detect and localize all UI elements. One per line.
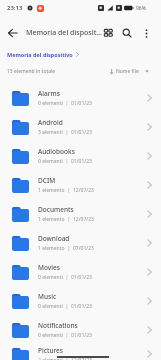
staticText: 01/01/23 — [71, 158, 92, 165]
staticText: 0 elementi — [38, 303, 63, 310]
staticText: | — [63, 274, 71, 281]
button[interactable]: DCIM — [0, 170, 161, 199]
staticText: 12/07/23 — [71, 357, 92, 360]
staticText: Android — [38, 118, 63, 127]
staticText: | — [63, 303, 71, 310]
staticText: 0 elementi — [38, 332, 63, 339]
staticText: 0 elementi — [38, 274, 63, 281]
staticText: 1 elemento — [38, 245, 65, 252]
staticText: | — [65, 245, 73, 252]
staticText: | — [63, 158, 71, 165]
staticText: 23:13 — [7, 4, 23, 12]
staticText: 1 elemento — [38, 216, 65, 223]
staticText: 2 elementi — [38, 357, 63, 360]
staticText: 01/01/23 — [71, 129, 92, 136]
button[interactable]: Documents — [0, 199, 161, 228]
button[interactable]: Android — [0, 112, 161, 141]
staticText: | — [63, 100, 71, 107]
button[interactable]: Pictures — [0, 346, 161, 360]
staticText: Notifications — [38, 321, 78, 330]
staticText: | — [63, 332, 71, 339]
staticText: 01/01/23 — [71, 332, 92, 339]
staticText: 1 elemento — [38, 187, 65, 194]
staticText: Alarms — [38, 89, 60, 98]
staticText: 12/07/23 — [73, 187, 94, 194]
staticText: 3 elementi — [38, 129, 63, 136]
staticText: | — [65, 216, 73, 223]
staticText: 96% — [136, 5, 146, 12]
button[interactable]: Memoria del dispositivo — [7, 51, 79, 58]
staticText: Memoria del disposit... — [26, 28, 103, 38]
staticText: 07/01/23 — [73, 245, 94, 252]
staticText: DCIM — [38, 176, 56, 185]
staticText: Documents — [38, 205, 74, 214]
staticText: 0 elementi — [38, 158, 63, 165]
button[interactable]: Notifications — [0, 315, 161, 344]
staticText: Pictures — [38, 346, 63, 355]
button[interactable]: Music — [0, 286, 161, 315]
button[interactable] — [8, 23, 22, 43]
staticText: | — [63, 357, 71, 360]
staticText: 12/07/23 — [73, 216, 94, 223]
staticText: Music — [38, 292, 57, 301]
button[interactable]: Download — [0, 228, 161, 257]
staticText: Memoria del dispositivo — [7, 51, 73, 58]
button[interactable] — [102, 22, 114, 44]
staticText: 01/01/23 — [71, 100, 92, 107]
staticText: Audiobooks — [38, 147, 75, 156]
staticText: 0 elementi — [38, 100, 63, 107]
staticText: Download — [38, 234, 70, 243]
staticText: 01/01/23 — [71, 274, 92, 281]
staticText: Movies — [38, 263, 60, 272]
staticText: Nome file — [116, 68, 139, 75]
button[interactable] — [121, 22, 133, 44]
button[interactable]: Movies — [0, 257, 161, 286]
staticText: 13 elementi in totale — [7, 68, 56, 75]
button[interactable] — [140, 22, 152, 44]
staticText: | — [63, 129, 71, 136]
staticText: | — [65, 187, 73, 194]
button[interactable]: Alarms — [0, 83, 161, 112]
button[interactable]: Nome file — [110, 68, 149, 75]
button[interactable]: Audiobooks — [0, 141, 161, 170]
staticText: 01/01/23 — [71, 303, 92, 310]
